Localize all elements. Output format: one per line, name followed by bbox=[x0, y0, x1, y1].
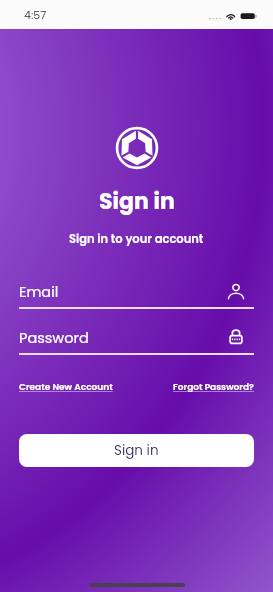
other: Account bbox=[227, 282, 245, 300]
staticText: Email bbox=[19, 282, 59, 302]
button[interactable]: Create New Account bbox=[19, 381, 113, 394]
button[interactable]: Password bbox=[19, 328, 254, 354]
staticText: Password bbox=[19, 328, 89, 348]
button[interactable]: Email bbox=[19, 282, 254, 308]
staticText: Sign in to your account bbox=[69, 231, 204, 247]
button[interactable]: Forgot Password? bbox=[173, 381, 254, 394]
staticText: Sign in bbox=[99, 186, 175, 217]
staticText: 4:57 bbox=[24, 7, 47, 22]
button[interactable]: Sign in bbox=[19, 434, 254, 467]
staticText: Sign in bbox=[114, 441, 159, 460]
other: Password bbox=[227, 328, 245, 346]
